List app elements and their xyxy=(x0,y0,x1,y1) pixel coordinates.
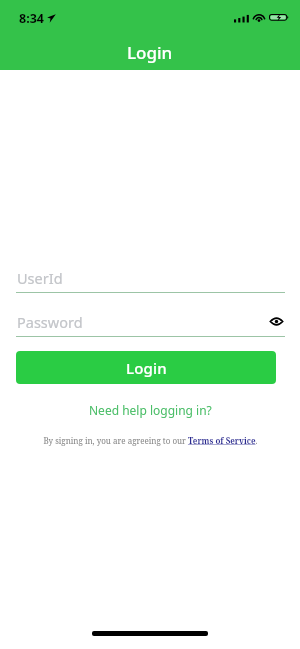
staticText: 8:34 xyxy=(19,10,44,27)
button[interactable]: By signing in, you are agreeing to our T… xyxy=(43,435,258,446)
button[interactable]: Login xyxy=(16,351,276,384)
button[interactable]: UserId xyxy=(16,266,285,293)
staticText: Password xyxy=(17,312,83,332)
button[interactable]: Need help logging in? xyxy=(89,400,212,420)
staticText: UserId xyxy=(17,268,63,288)
staticText: Login xyxy=(127,41,173,64)
button[interactable]: Password xyxy=(16,310,285,337)
staticText: Login xyxy=(126,358,167,378)
button[interactable]: Show password xyxy=(266,311,286,331)
staticText: Need help logging in? xyxy=(89,402,212,418)
